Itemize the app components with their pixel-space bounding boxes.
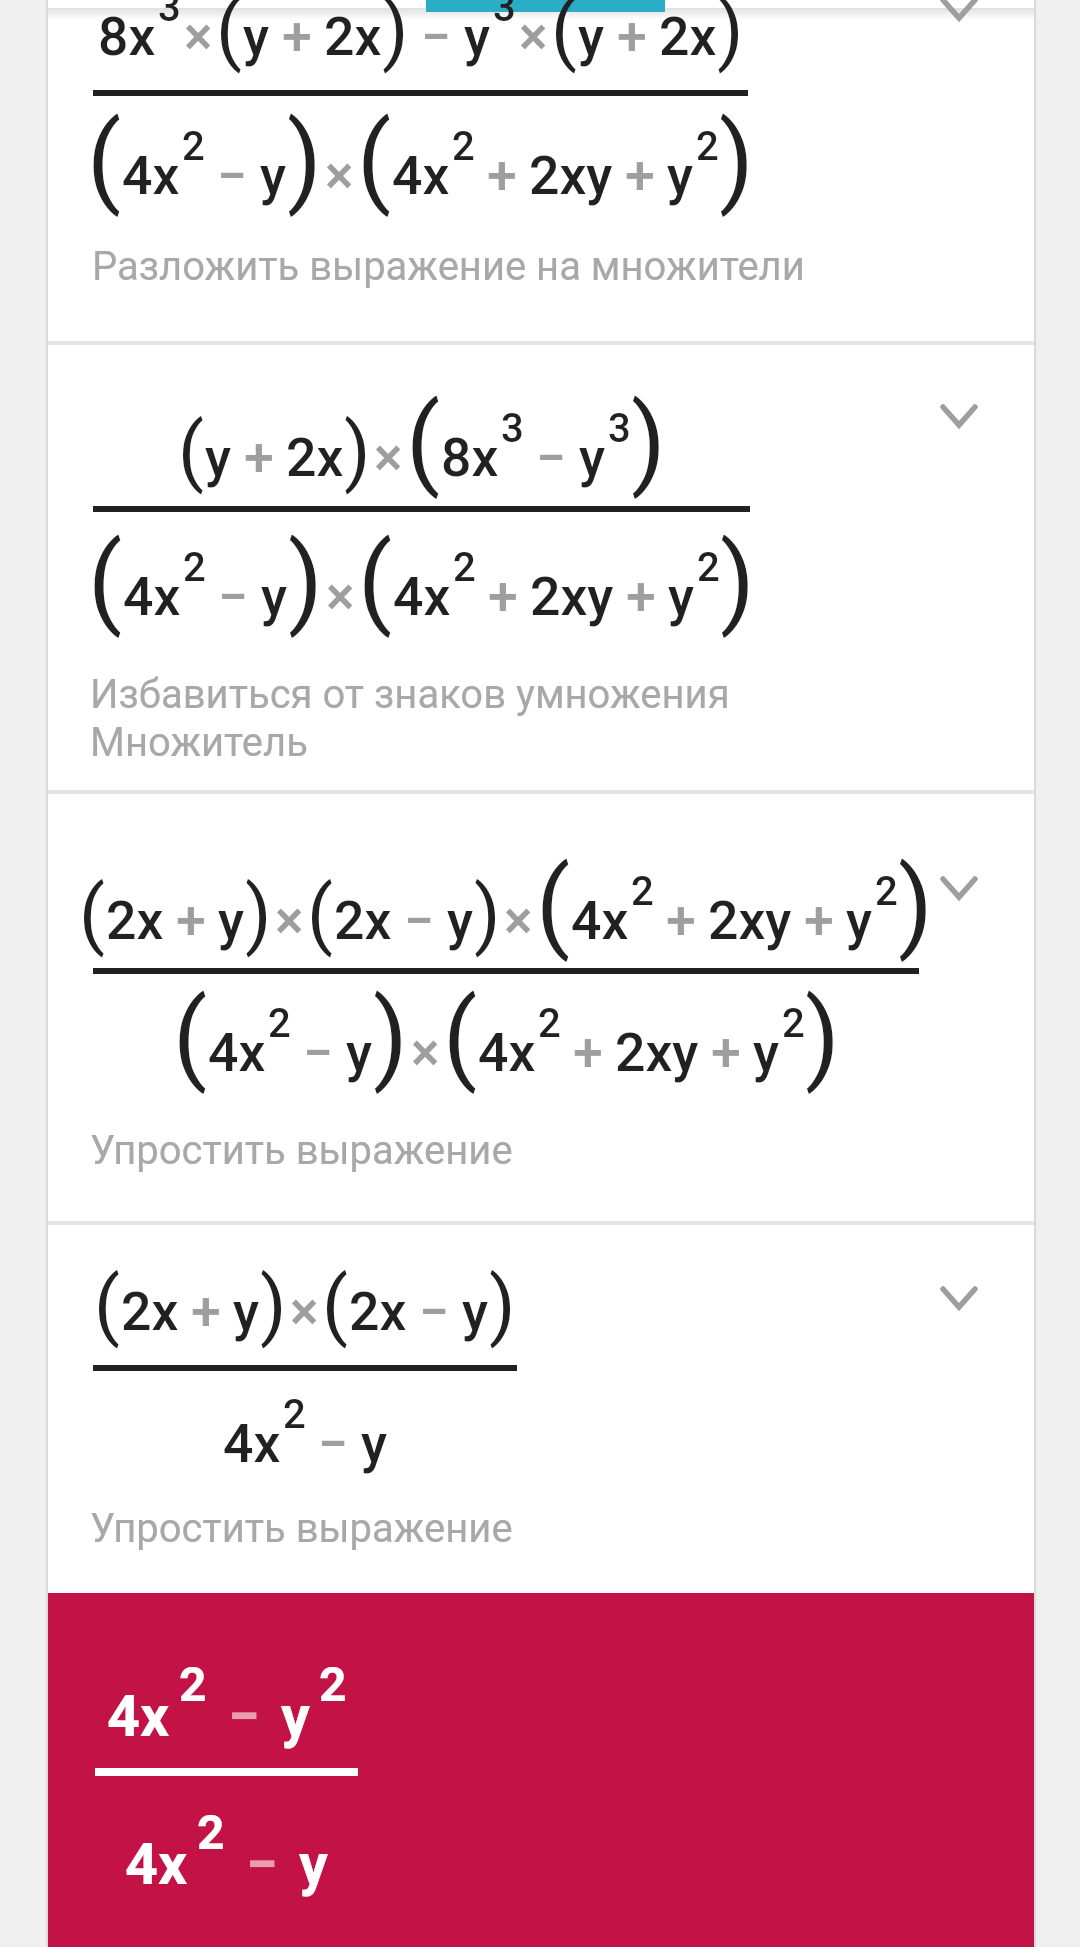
staticText: ) (719, 101, 754, 218)
staticText: ) (288, 522, 323, 639)
staticText: y (753, 1021, 780, 1084)
staticText: 2 (697, 544, 720, 591)
staticText: 2 (453, 544, 476, 591)
staticText: ( (307, 869, 334, 958)
staticText: 2xy (530, 565, 614, 628)
staticText: × (325, 144, 354, 207)
staticText: ) (260, 1260, 287, 1349)
staticText: 2 (319, 1656, 347, 1712)
staticText: y (299, 1831, 328, 1898)
staticText: 4x (571, 889, 629, 952)
staticText: y (464, 5, 491, 68)
staticText: 2x (349, 1280, 407, 1343)
staticText: ( (178, 406, 205, 495)
staticText: 4x (208, 1021, 266, 1084)
button[interactable]: 4x (48, 1593, 1034, 1947)
staticText: 2 (268, 1000, 291, 1047)
staticText: ) (382, 0, 409, 74)
staticText: y (346, 1021, 373, 1084)
staticText: 4x (223, 1412, 281, 1475)
staticText: ) (805, 978, 840, 1095)
staticText: ) (245, 869, 272, 958)
button[interactable]: 8x (48, 0, 1034, 341)
staticText: 3 (501, 405, 524, 452)
staticText: ( (88, 522, 123, 639)
staticText: 2 (538, 1000, 561, 1047)
staticText: + (666, 889, 696, 952)
staticText: ( (357, 101, 392, 218)
staticText: 2xy (615, 1021, 699, 1084)
staticText: 2 (696, 123, 719, 170)
staticText: Упростить выражение (90, 1127, 513, 1174)
staticText: ) (717, 0, 744, 74)
staticText: 3 (608, 405, 631, 452)
staticText: ( (173, 978, 208, 1095)
staticText: ) (474, 869, 501, 958)
staticText: ( (79, 869, 106, 958)
staticText: ( (536, 846, 571, 963)
staticText: − (421, 5, 452, 68)
button[interactable]: ( (48, 794, 1034, 1221)
staticText: ) (489, 1260, 516, 1349)
staticText: + (625, 144, 655, 207)
staticText: y (668, 565, 695, 628)
staticText: y (667, 144, 694, 207)
staticText: × (326, 565, 355, 628)
staticText: 3 (493, 0, 516, 31)
staticText: y (261, 565, 288, 628)
staticText: 4x (393, 565, 451, 628)
staticText: × (519, 5, 548, 68)
staticText: ( (322, 1260, 349, 1349)
staticText: ) (898, 846, 933, 963)
staticText: ( (443, 978, 478, 1095)
staticText: y (218, 889, 245, 952)
staticText: × (504, 889, 533, 952)
staticText: 2 (875, 868, 898, 915)
staticText: − (228, 1683, 260, 1750)
staticText: 2x (121, 1280, 179, 1343)
staticText: 2xy (708, 889, 792, 952)
staticText: × (290, 1280, 319, 1343)
staticText: × (374, 426, 403, 489)
staticText: ) (631, 383, 666, 500)
staticText: − (318, 1412, 349, 1475)
staticText: y (233, 1280, 260, 1343)
staticText: × (275, 889, 304, 952)
staticText: 8x (98, 5, 156, 68)
staticText: + (282, 5, 312, 68)
staticText: ) (720, 522, 755, 639)
staticText: y (243, 5, 270, 68)
staticText: + (573, 1021, 603, 1084)
staticText: + (488, 565, 518, 628)
staticText: ) (344, 406, 371, 495)
staticText: ) (373, 978, 408, 1095)
staticText: 2 (283, 1391, 306, 1438)
staticText: 4x (125, 1831, 188, 1898)
button[interactable]: ( (48, 345, 1034, 790)
staticText: − (303, 1021, 334, 1084)
staticText: 2xy (529, 144, 613, 207)
staticText: ( (216, 0, 243, 74)
staticText: 4x (123, 565, 181, 628)
staticText: 4x (107, 1683, 170, 1750)
staticText: 4x (122, 144, 180, 207)
staticText: ( (94, 1260, 121, 1349)
staticText: y (462, 1280, 489, 1343)
staticText: 2 (197, 1804, 225, 1860)
staticText: 2 (631, 868, 654, 915)
staticText: + (487, 144, 517, 207)
staticText: 2 (183, 544, 206, 591)
staticText: y (361, 1412, 388, 1475)
staticText: + (626, 565, 656, 628)
staticText: 3 (158, 0, 181, 31)
staticText: ( (358, 522, 393, 639)
staticText: ( (551, 0, 578, 74)
staticText: + (191, 1280, 221, 1343)
staticText: ( (87, 101, 122, 218)
staticText: − (217, 144, 248, 207)
staticText: y (578, 5, 605, 68)
staticText: 2 (179, 1656, 207, 1712)
button[interactable]: ( (48, 1225, 1034, 1593)
staticText: + (244, 426, 274, 489)
staticText: − (218, 565, 249, 628)
